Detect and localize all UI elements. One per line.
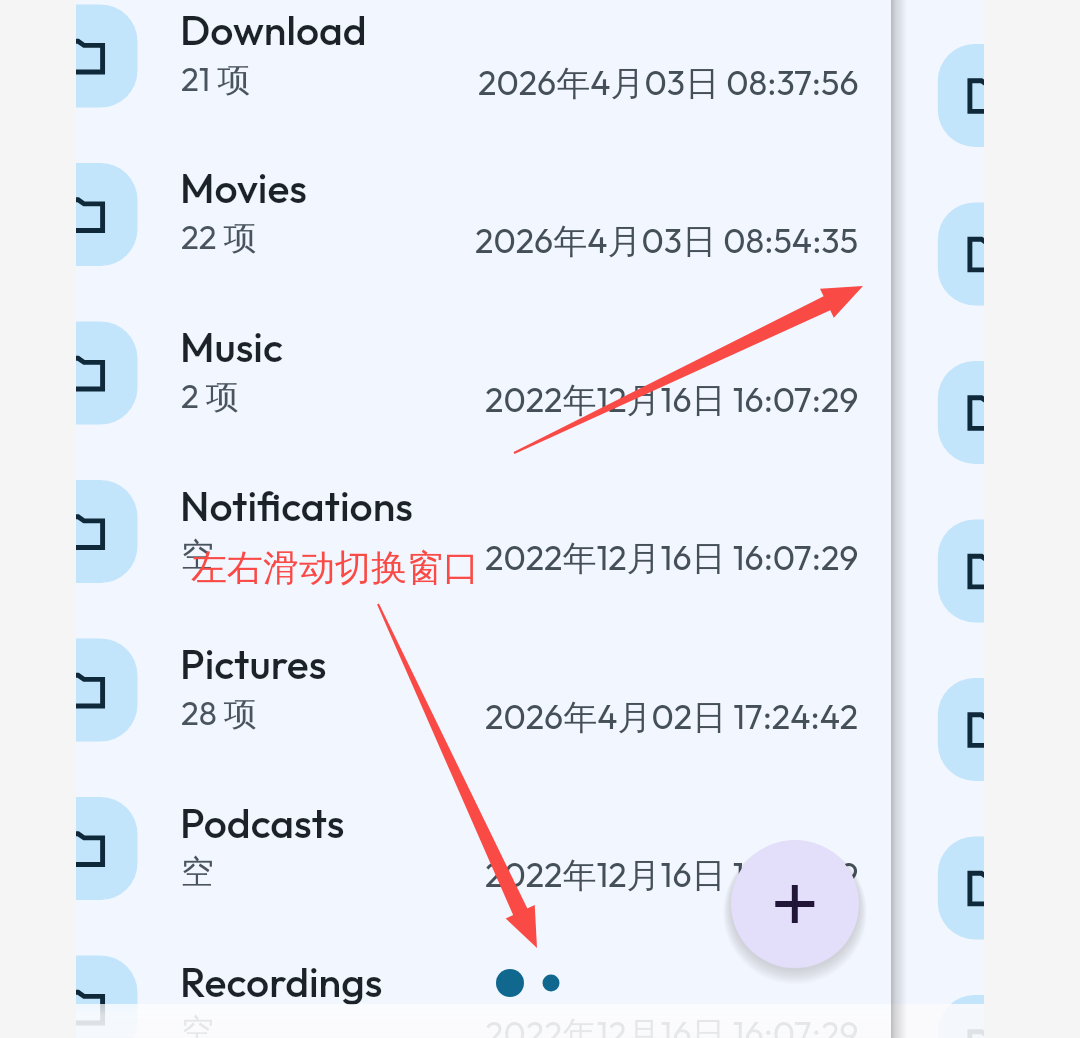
staticText: 22 项 bbox=[181, 216, 257, 259]
button[interactable]: Add bbox=[731, 840, 859, 968]
staticText: 左右滑动切换窗口 bbox=[191, 545, 479, 590]
staticText: 28 项 bbox=[181, 692, 257, 735]
button[interactable]: Pictures bbox=[76, 611, 891, 770]
staticText: 2022年12月16日 16:07:29 bbox=[485, 536, 859, 580]
button[interactable]: Music bbox=[76, 294, 891, 453]
staticText: 空 bbox=[181, 534, 214, 576]
button[interactable]: Podcasts bbox=[76, 769, 891, 928]
staticText: 2 项 bbox=[181, 375, 239, 418]
staticText: 空 bbox=[181, 1010, 214, 1038]
staticText: 2026年4月02日 17:24:42 bbox=[485, 695, 859, 739]
button[interactable]: Download bbox=[76, 0, 891, 136]
staticText: 2026年4月03日 08:37:56 bbox=[478, 61, 859, 105]
staticText: 21 项 bbox=[181, 58, 251, 101]
button[interactable]: Notifications bbox=[76, 452, 891, 611]
staticText: Download bbox=[180, 4, 367, 56]
staticText: 2026年4月03日 08:54:35 bbox=[475, 219, 859, 263]
staticText: Notifications bbox=[180, 480, 413, 532]
staticText: 2022年12月16日 16:07:29 bbox=[485, 853, 859, 897]
staticText: Pictures bbox=[180, 638, 327, 690]
button[interactable]: Recordings bbox=[76, 928, 891, 1038]
staticText: 2022年12月16日 16:07:29 bbox=[485, 1012, 859, 1038]
staticText: Recordings bbox=[180, 956, 383, 1008]
staticText: Music bbox=[180, 321, 283, 373]
button[interactable]: Movies bbox=[76, 135, 891, 294]
staticText: 空 bbox=[181, 851, 214, 893]
staticText: Movies bbox=[180, 162, 307, 214]
staticText: Podcasts bbox=[180, 797, 345, 849]
staticText: 2022年12月16日 16:07:29 bbox=[485, 378, 859, 422]
